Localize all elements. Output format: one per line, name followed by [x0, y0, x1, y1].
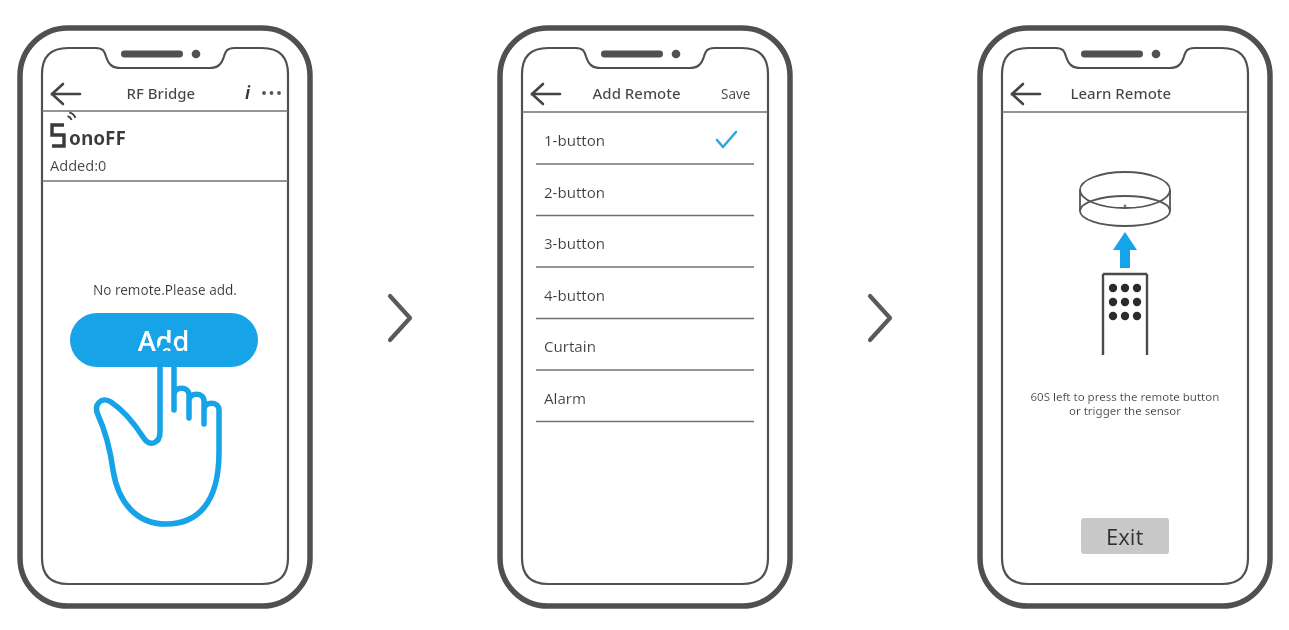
button[interactable] — [712, 78, 768, 110]
button[interactable]: Back — [520, 78, 564, 110]
button[interactable]: Info — [248, 78, 276, 110]
button[interactable]: Exit — [1082, 518, 1170, 554]
button[interactable]: Back — [40, 78, 84, 110]
button[interactable]: Back — [1000, 78, 1044, 110]
button[interactable]: More options — [276, 78, 304, 110]
button[interactable] — [522, 274, 768, 318]
button[interactable] — [522, 325, 768, 369]
button[interactable] — [522, 380, 768, 424]
button[interactable]: Add — [70, 313, 258, 367]
button[interactable] — [522, 118, 768, 162]
button[interactable] — [522, 170, 768, 214]
button[interactable] — [522, 222, 768, 266]
